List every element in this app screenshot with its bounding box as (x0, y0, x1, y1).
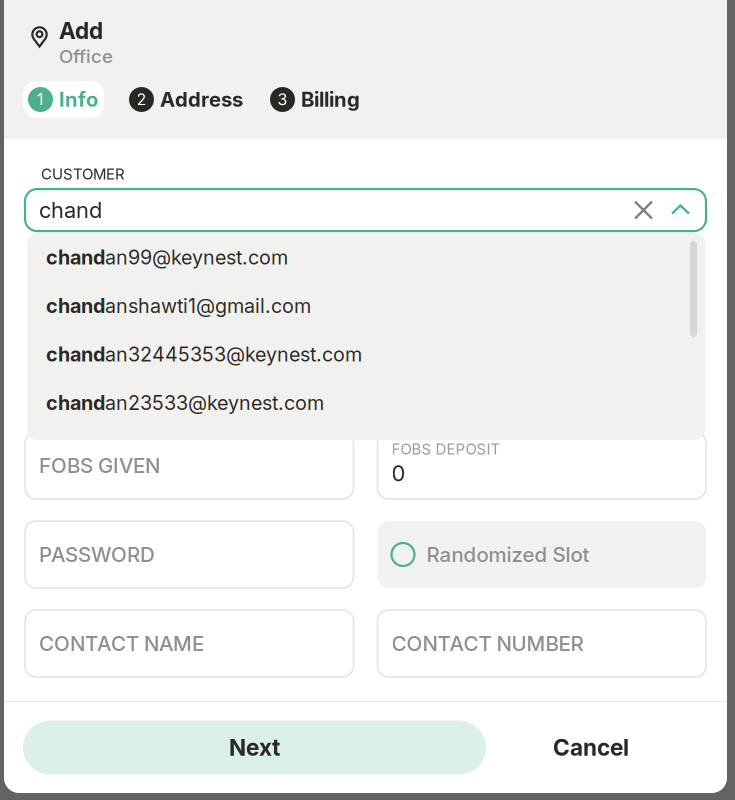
staticText: 1 (37, 90, 44, 109)
staticText: chand (46, 294, 105, 318)
button[interactable]: chand (27, 330, 705, 378)
staticText: 0 (391, 460, 405, 487)
staticText: CUSTOMER (41, 165, 125, 183)
staticText: PASSWORD (39, 542, 155, 567)
staticText: CONTACT NUMBER (391, 631, 583, 656)
staticText: Add (59, 17, 103, 44)
staticText: Randomized Slot (426, 542, 589, 567)
button[interactable]: FOBS GIVEN (25, 432, 353, 499)
staticText: CONTACT NAME (39, 631, 204, 656)
button[interactable]: PASSWORD (25, 521, 353, 588)
staticText: 3 (277, 90, 287, 109)
staticText: chand (39, 197, 102, 223)
staticText: Info (59, 87, 98, 112)
staticText: chand (46, 342, 105, 366)
staticText: FOBS DEPOSIT (391, 440, 500, 458)
staticText: Next (229, 734, 280, 761)
button[interactable]: 3 (265, 81, 366, 118)
staticText: chand (46, 245, 105, 269)
staticText: 2 (136, 90, 146, 109)
staticText: Cancel (553, 734, 629, 761)
button[interactable]: chand (27, 281, 705, 330)
staticText: an32445353@keynest.com (105, 342, 362, 366)
staticText: Office (59, 45, 113, 68)
button[interactable]: 2 (124, 81, 249, 118)
staticText: an23533@keynest.com (105, 391, 324, 415)
button[interactable]: chand (27, 233, 705, 281)
button[interactable]: FOBS DEPOSIT (377, 432, 706, 499)
staticText: chand (46, 391, 105, 415)
button[interactable]: 1 (23, 81, 104, 118)
button[interactable]: chand (27, 378, 705, 427)
button[interactable]: Cancel (486, 721, 696, 775)
staticText: FOBS GIVEN (39, 453, 160, 478)
button[interactable]: Randomized Slot (377, 521, 706, 588)
button[interactable]: Next (23, 721, 486, 775)
staticText: an99@keynest.com (105, 245, 288, 269)
staticText: Address (160, 87, 243, 112)
button[interactable]: CONTACT NUMBER (377, 610, 706, 677)
button[interactable]: CONTACT NAME (25, 610, 353, 677)
staticText: anshawti1@gmail.com (105, 294, 311, 318)
staticText: Billing (301, 87, 360, 112)
